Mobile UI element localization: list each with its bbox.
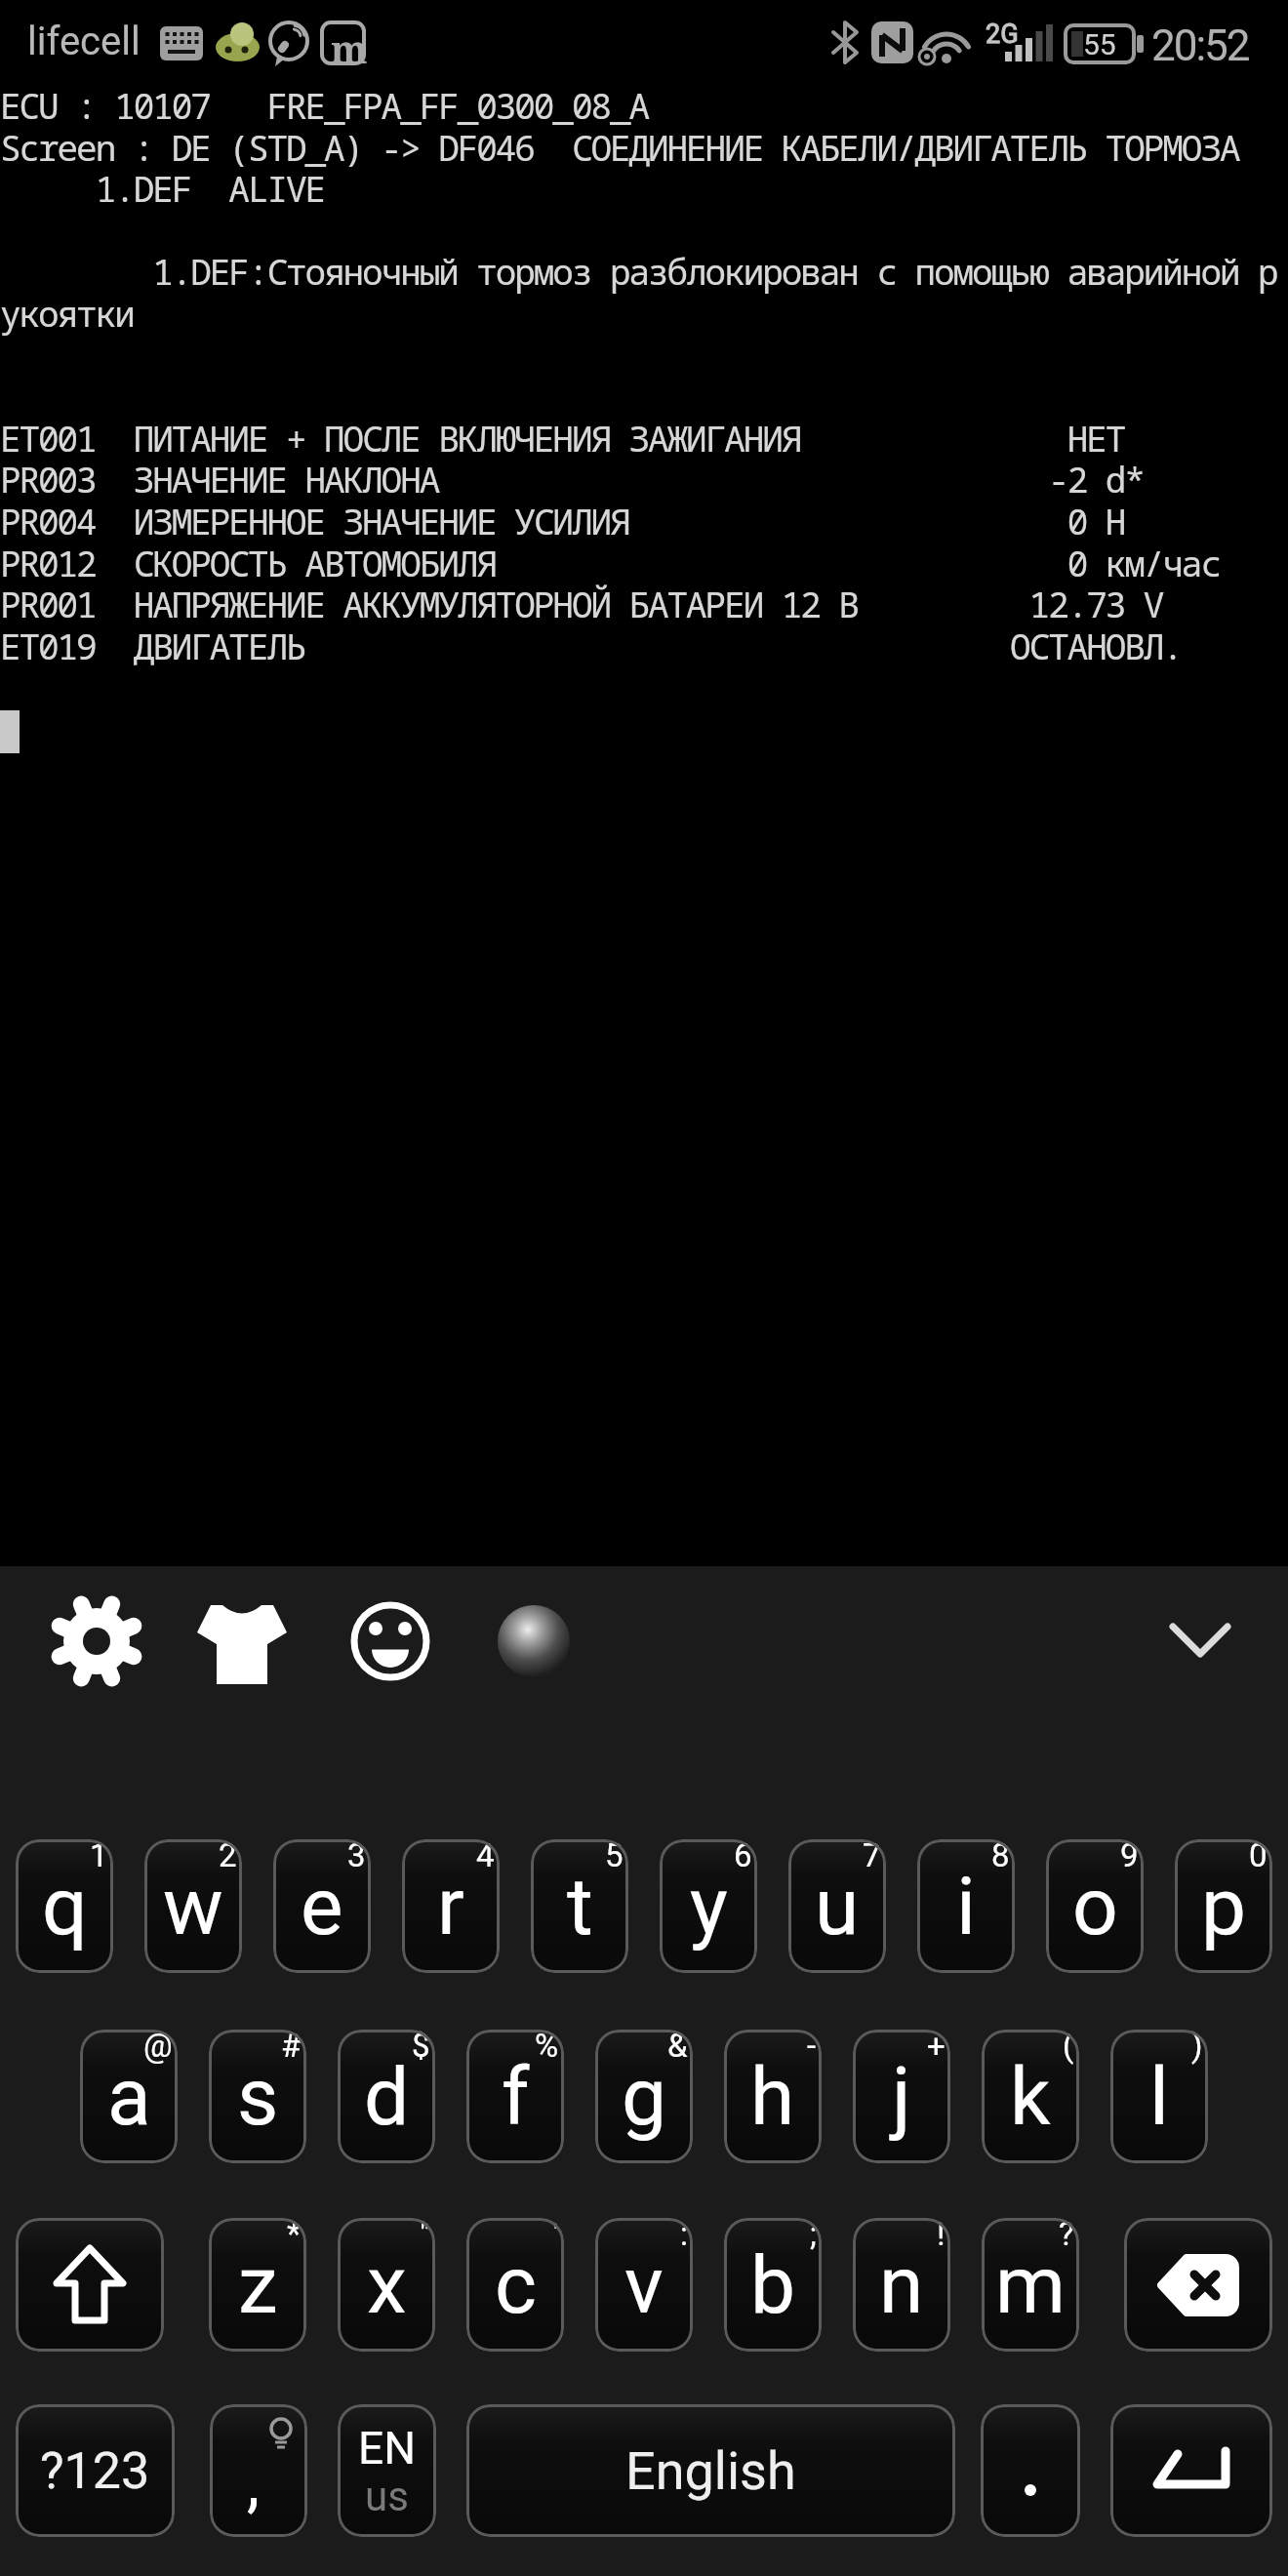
button[interactable]: j <box>853 2030 950 2163</box>
button[interactable]: z <box>209 2218 306 2352</box>
staticText: 3 <box>235 21 249 49</box>
button[interactable] <box>195 1600 289 1690</box>
button[interactable] <box>1124 2218 1272 2352</box>
button[interactable]: v <box>595 2218 693 2352</box>
staticText: lifecell <box>27 19 141 64</box>
staticText: English <box>625 2440 796 2502</box>
staticText: ; <box>810 2218 817 2253</box>
staticText: 20:52 <box>1151 20 1249 71</box>
button[interactable]: p <box>1175 1839 1272 1973</box>
staticText: 3 <box>347 1839 366 1874</box>
staticText: s <box>237 2050 279 2144</box>
button[interactable] <box>54 1598 141 1686</box>
staticText: r <box>437 1860 464 1953</box>
button[interactable]: t <box>531 1839 628 1973</box>
staticText: 0 <box>1249 1839 1268 1874</box>
button[interactable]: c <box>466 2218 564 2352</box>
button[interactable]: x <box>338 2218 435 2352</box>
staticText: e <box>301 1860 343 1953</box>
button[interactable] <box>1110 2404 1272 2537</box>
button[interactable]: n <box>853 2218 950 2352</box>
staticText: k <box>1010 2050 1051 2144</box>
staticText: PR004 ИЗМЕРЕННОЕ ЗНАЧЕНИЕ УСИЛИЯ 0 Н <box>0 498 1125 545</box>
staticText: ? <box>1059 2218 1074 2253</box>
staticText: PR001 НАПРЯЖЕНИЕ АККУМУЛЯТОРНОЙ БАТАРЕИ … <box>0 581 1163 628</box>
staticText: o <box>1072 1860 1118 1953</box>
button[interactable]: d <box>338 2030 435 2163</box>
staticText: ' <box>553 2218 559 2253</box>
staticText: n <box>879 2238 924 2332</box>
staticText: t <box>567 1860 593 1953</box>
button[interactable]: q <box>16 1839 113 1973</box>
staticText: , <box>247 2445 260 2520</box>
button[interactable] <box>16 2218 164 2352</box>
staticText: w <box>163 1860 223 1953</box>
staticText: " <box>420 2218 430 2253</box>
button[interactable] <box>981 2404 1080 2537</box>
button[interactable]: e <box>273 1839 371 1973</box>
staticText: ?123 <box>40 2441 150 2501</box>
staticText: 1 <box>90 1839 108 1874</box>
button[interactable]: y <box>660 1839 757 1973</box>
staticText: $ <box>412 2030 430 2065</box>
staticText: i <box>956 1860 976 1953</box>
button[interactable]: u <box>788 1839 886 1973</box>
staticText: ECU : 10107 FRE_FPA_FF_0300_08_A <box>0 82 649 130</box>
staticText: z <box>238 2238 278 2332</box>
staticText: g <box>622 2050 667 2144</box>
button[interactable]: k <box>982 2030 1079 2163</box>
staticText: f <box>502 2050 530 2144</box>
staticText: 1.DEF ALIVE <box>0 165 325 213</box>
staticText: 2G <box>986 19 1019 50</box>
staticText: : <box>680 2218 688 2253</box>
staticText: y <box>690 1860 728 1953</box>
staticText: d <box>364 2050 410 2144</box>
staticText: b <box>750 2238 796 2332</box>
staticText: a <box>107 2050 151 2144</box>
button[interactable]: r <box>402 1839 500 1973</box>
staticText: PR012 СКОРОСТЬ АВТОМОБИЛЯ 0 км/час <box>0 540 1220 587</box>
staticText: c <box>495 2238 537 2332</box>
button[interactable] <box>346 1597 434 1685</box>
staticText: q <box>42 1860 88 1953</box>
button[interactable]: g <box>595 2030 693 2163</box>
staticText: v <box>624 2238 664 2332</box>
staticText: 9 <box>1120 1839 1139 1874</box>
staticText: ET001 ПИТАНИЕ + ПОСЛЕ ВКЛЮЧЕНИЯ ЗАЖИГАНИ… <box>0 415 1125 463</box>
staticText: ! <box>937 2218 946 2253</box>
button[interactable]: b <box>724 2218 822 2352</box>
button[interactable]: EN <box>338 2404 436 2537</box>
staticText: x <box>367 2238 407 2332</box>
button[interactable]: m <box>982 2218 1079 2352</box>
button[interactable] <box>1156 1605 1244 1673</box>
staticText: % <box>535 2030 559 2065</box>
button[interactable]: English <box>466 2404 955 2537</box>
button[interactable]: w <box>144 1839 242 1973</box>
staticText: Screen : DE (STD_A) -> DF046 СОЕДИНЕНИЕ … <box>0 124 1239 172</box>
button[interactable]: l <box>1110 2030 1208 2163</box>
staticText: PR003 ЗНАЧЕНИЕ НАКЛОНА -2 d* <box>0 456 1144 503</box>
button[interactable]: a <box>80 2030 178 2163</box>
staticText: ET019 ДВИГАТЕЛЬ ОСТАНОВЛ. <box>0 623 1182 670</box>
staticText: 7 <box>863 1839 881 1874</box>
button[interactable]: f <box>466 2030 564 2163</box>
button[interactable] <box>493 1600 575 1682</box>
staticText: j <box>892 2050 911 2144</box>
staticText: u <box>815 1860 860 1953</box>
button[interactable]: h <box>724 2030 822 2163</box>
button[interactable]: ?123 <box>16 2404 175 2537</box>
staticText: @ <box>143 2030 173 2065</box>
staticText: # <box>281 2030 302 2065</box>
staticText: ) <box>1191 2030 1203 2065</box>
staticText: 4 <box>476 1839 495 1874</box>
staticText: EN <box>358 2422 416 2475</box>
staticText: h <box>750 2050 795 2144</box>
staticText: 1.DEF:Стояночный тормоз разблокирован с … <box>0 248 1277 296</box>
staticText: l <box>1149 2050 1169 2144</box>
button[interactable]: s <box>209 2030 306 2163</box>
button[interactable]: o <box>1046 1839 1144 1973</box>
staticText: 6 <box>734 1839 752 1874</box>
button[interactable]: i <box>917 1839 1015 1973</box>
button[interactable]: , <box>210 2404 307 2537</box>
staticText: & <box>667 2030 688 2065</box>
